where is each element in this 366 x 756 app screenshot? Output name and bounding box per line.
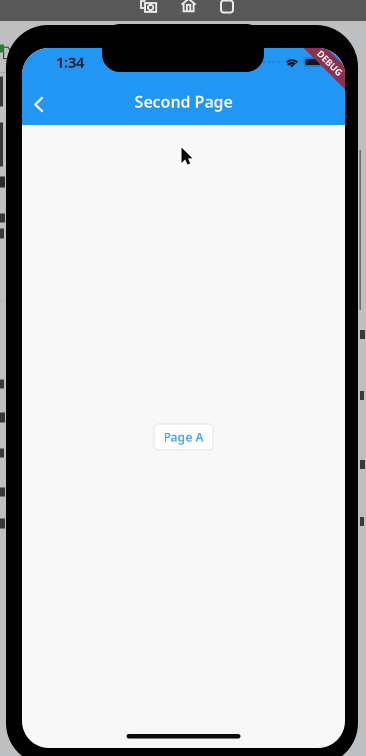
staticText: Second Page <box>134 91 232 112</box>
staticText: DEBUG <box>314 57 346 69</box>
button[interactable]: Screenshot <box>140 0 157 12</box>
button[interactable]: Back <box>22 83 56 125</box>
staticText: Page A <box>163 429 203 445</box>
button[interactable]: Home <box>181 0 196 12</box>
button[interactable]: Recent apps <box>221 0 233 12</box>
button[interactable]: Page A <box>154 424 213 450</box>
staticText: 1:34 <box>56 52 84 72</box>
